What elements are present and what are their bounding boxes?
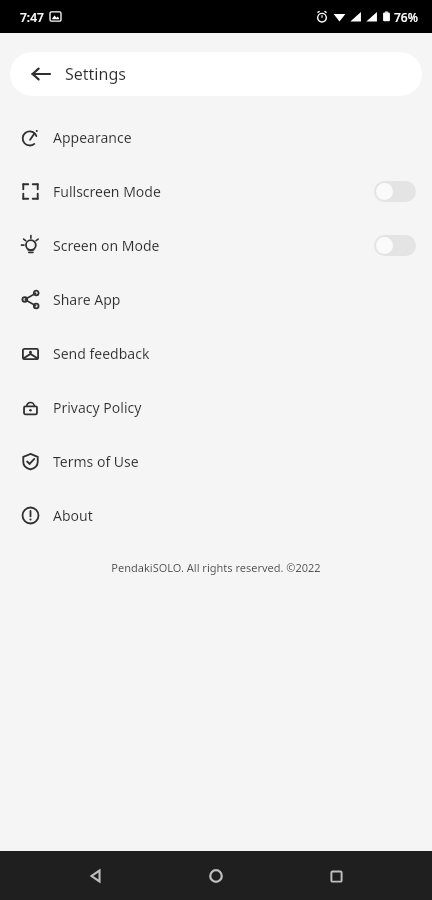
button[interactable]: Back — [72, 852, 120, 900]
staticText: Appearance — [53, 128, 132, 147]
staticText: Share App — [53, 290, 121, 309]
button[interactable]: Send feedback — [0, 326, 432, 380]
button[interactable]: Share App — [0, 272, 432, 326]
staticText: Send feedback — [53, 344, 150, 363]
button[interactable]: Fullscreen Mode — [0, 164, 432, 218]
staticText: 76% — [394, 9, 418, 25]
staticText: PendakiSOLO. All rights reserved. ©2022 — [111, 560, 321, 575]
button[interactable]: Screen on Mode toggle — [374, 235, 416, 256]
button[interactable]: Terms of Use — [0, 434, 432, 488]
staticText: Fullscreen Mode — [53, 182, 161, 201]
button[interactable]: About — [0, 488, 432, 542]
button[interactable]: Appearance — [0, 110, 432, 164]
staticText: Privacy Policy — [53, 398, 142, 417]
staticText: Settings — [65, 63, 126, 85]
button[interactable]: Privacy Policy — [0, 380, 432, 434]
button[interactable]: Fullscreen Mode toggle — [374, 181, 416, 202]
staticText: 7:47 — [20, 9, 44, 25]
staticText: About — [53, 506, 93, 525]
staticText: Terms of Use — [53, 452, 139, 471]
button[interactable]: Recents — [312, 852, 360, 900]
button[interactable]: Screen on Mode — [0, 218, 432, 272]
button[interactable]: Home — [192, 852, 240, 900]
button[interactable]: Back — [24, 57, 58, 91]
staticText: Screen on Mode — [53, 236, 160, 255]
